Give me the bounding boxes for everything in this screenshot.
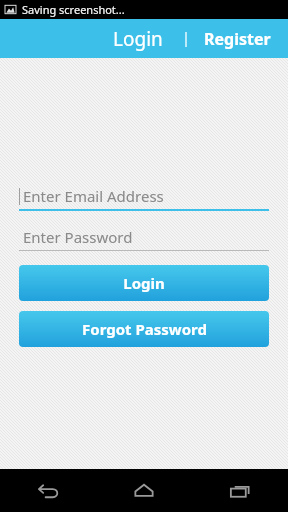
button[interactable]: Back: [0, 469, 96, 512]
button[interactable]: Login: [19, 265, 269, 301]
button[interactable]: Register: [200, 24, 275, 54]
staticText: Login: [113, 26, 163, 52]
staticText: Login: [123, 273, 165, 293]
staticText: Forgot Password: [82, 319, 207, 339]
button[interactable]: Home: [96, 469, 192, 512]
button[interactable]: Enter Password: [19, 227, 269, 251]
button[interactable]: Login: [107, 22, 169, 56]
staticText: Enter Password: [23, 227, 133, 247]
staticText: Enter Email Address: [23, 186, 164, 206]
button[interactable]: Forgot Password: [19, 311, 269, 347]
button[interactable]: Recent apps: [192, 469, 288, 512]
button[interactable]: Enter Email Address: [19, 186, 269, 211]
staticText: Register: [204, 28, 271, 50]
staticText: Saving screenshot...: [22, 2, 125, 17]
